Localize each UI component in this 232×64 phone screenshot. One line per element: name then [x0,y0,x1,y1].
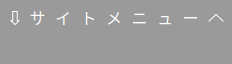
button[interactable]: サイトメニュー [0,0,232,64]
staticText: サイトメニュー [29,5,198,29]
